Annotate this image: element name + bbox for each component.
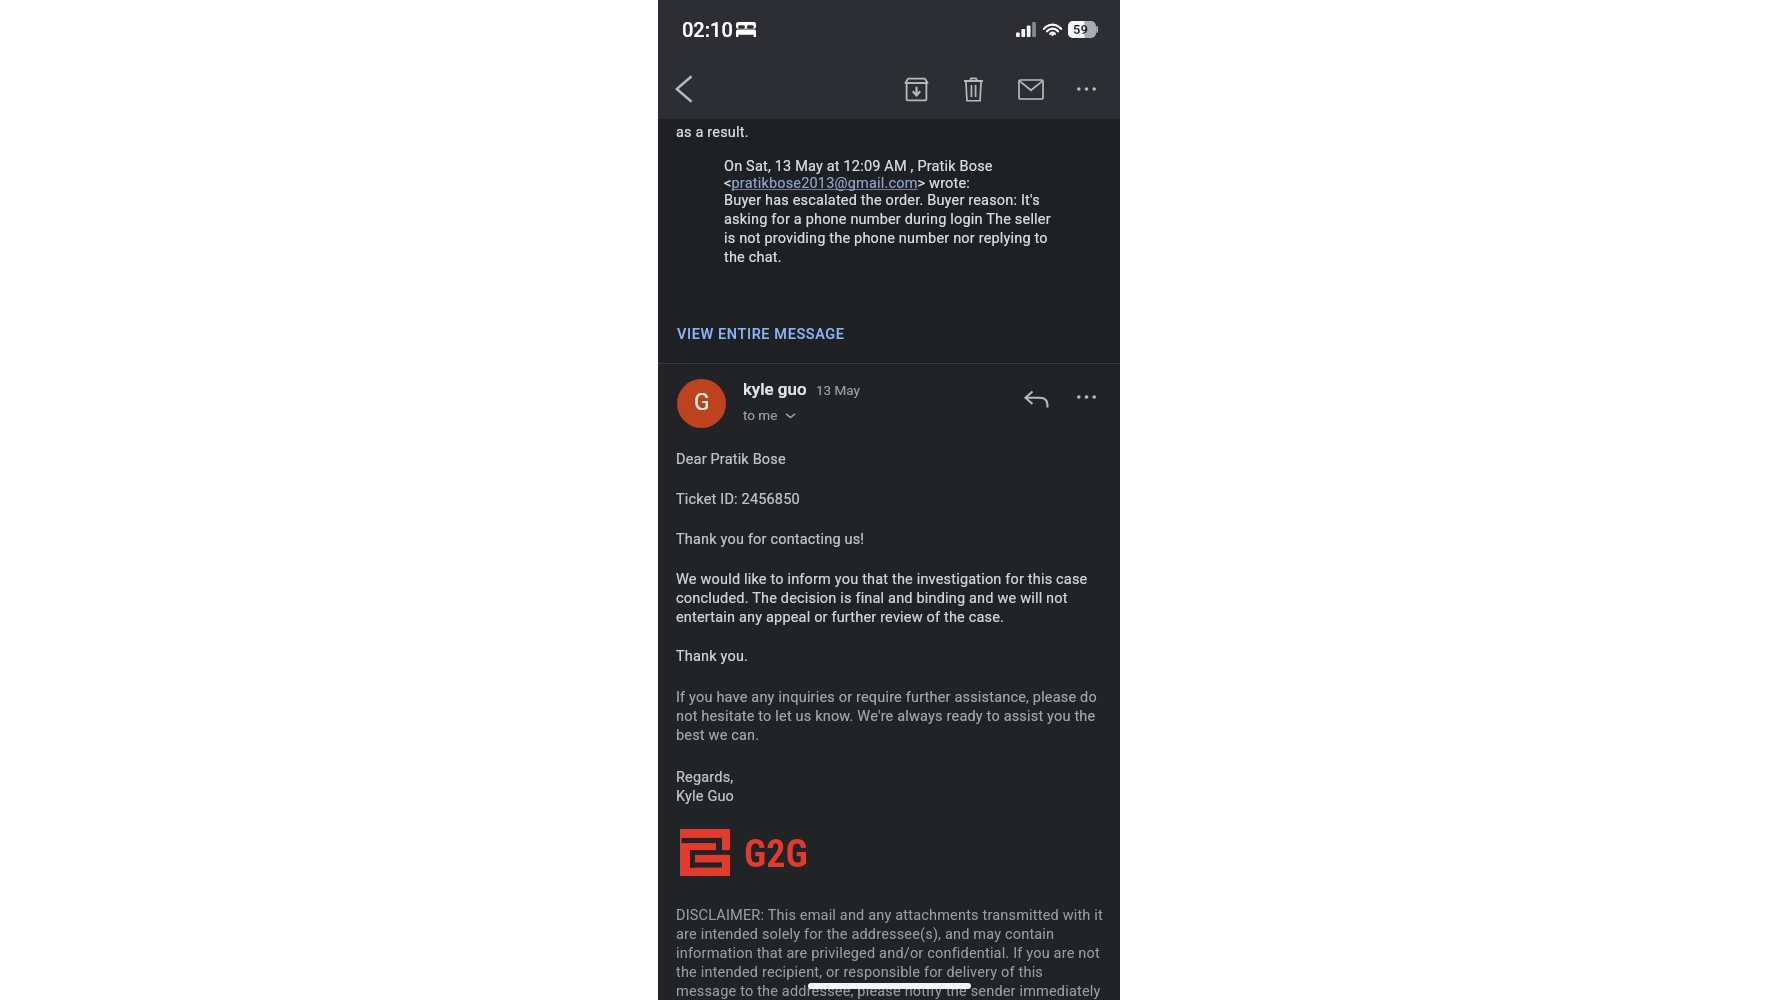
staticText: DISCLAIMER: This email and any attachmen… xyxy=(676,907,1106,1000)
button[interactable]: Sender avatar xyxy=(677,379,726,428)
staticText: to me xyxy=(743,407,778,423)
staticText: Thank you. xyxy=(676,648,1106,665)
staticText: Ticket ID: 2456850 xyxy=(676,491,1106,508)
button[interactable]: VIEW ENTIRE MESSAGE xyxy=(666,319,856,350)
button[interactable]: Back xyxy=(660,65,708,113)
staticText: kyle guo xyxy=(743,379,807,399)
staticText: On Sat, 13 May at 12:09 AM , Pratik Bose xyxy=(724,158,993,175)
staticText: Thank you for contacting us! xyxy=(676,531,1106,548)
staticText: as a result. xyxy=(676,124,749,141)
staticText: 59 xyxy=(1073,22,1088,37)
staticText: 13 May xyxy=(816,382,860,398)
staticText: G xyxy=(694,389,710,416)
staticText: Dear Pratik Bose xyxy=(676,451,1106,468)
button[interactable]: <pratikbose2013@gmail.com> wrote: xyxy=(724,175,971,192)
button[interactable]: Archive xyxy=(893,66,939,112)
button[interactable]: to me xyxy=(743,407,797,423)
button[interactable]: More options xyxy=(1066,375,1110,419)
staticText: Buyer has escalated the order. Buyer rea… xyxy=(724,192,1063,266)
staticText: Regards, xyxy=(676,769,1106,786)
staticText: 02:10 xyxy=(682,18,733,41)
staticText: If you have any inquiries or require fur… xyxy=(676,689,1106,744)
button[interactable]: More options xyxy=(1065,66,1111,112)
button[interactable]: Mark as unread xyxy=(1008,66,1054,112)
button[interactable]: Reply xyxy=(1014,376,1058,420)
staticText: VIEW ENTIRE MESSAGE xyxy=(677,326,845,343)
staticText: Kyle Guo xyxy=(676,788,1106,805)
staticText: G2G xyxy=(744,832,808,877)
button[interactable]: Delete xyxy=(950,66,996,112)
staticText: We would like to inform you that the inv… xyxy=(676,571,1106,626)
